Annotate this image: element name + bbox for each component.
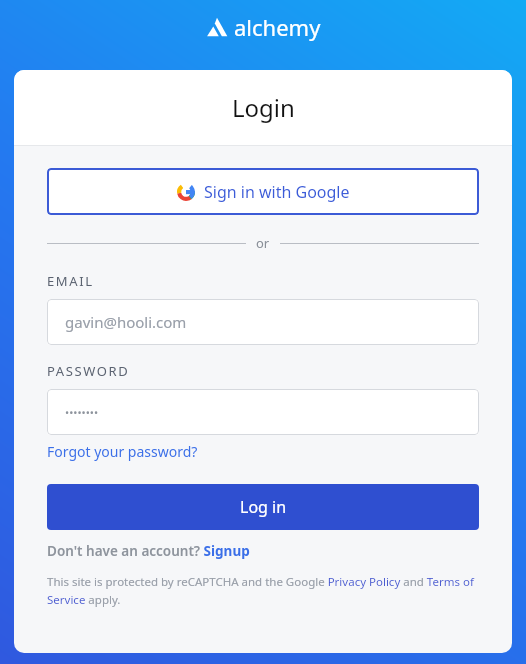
staticText: Don't have an account? Signup xyxy=(47,542,250,560)
other: Alchemy xyxy=(206,12,321,42)
staticText: Login xyxy=(232,91,295,124)
staticText: Sign in with Google xyxy=(204,181,350,203)
button[interactable]: Log in xyxy=(47,484,479,530)
button[interactable]: gavin@hooli.com xyxy=(47,299,479,345)
staticText: This site is protected by reCAPTCHA and … xyxy=(47,574,479,607)
staticText: PASSWORD xyxy=(47,362,130,380)
staticText: or xyxy=(256,234,270,252)
staticText: Log in xyxy=(240,496,287,518)
button[interactable]: Forgot your password? xyxy=(47,442,198,461)
button[interactable]: Don't have an account? Signup xyxy=(47,542,250,560)
staticText: gavin@hooli.com xyxy=(65,312,187,332)
staticText: •••••••• xyxy=(65,405,99,420)
button[interactable]: Sign in with Google xyxy=(47,168,479,215)
staticText: alchemy xyxy=(234,12,321,42)
staticText: Forgot your password? xyxy=(47,442,198,461)
button[interactable]: •••••••• xyxy=(47,389,479,435)
staticText: EMAIL xyxy=(47,272,94,290)
